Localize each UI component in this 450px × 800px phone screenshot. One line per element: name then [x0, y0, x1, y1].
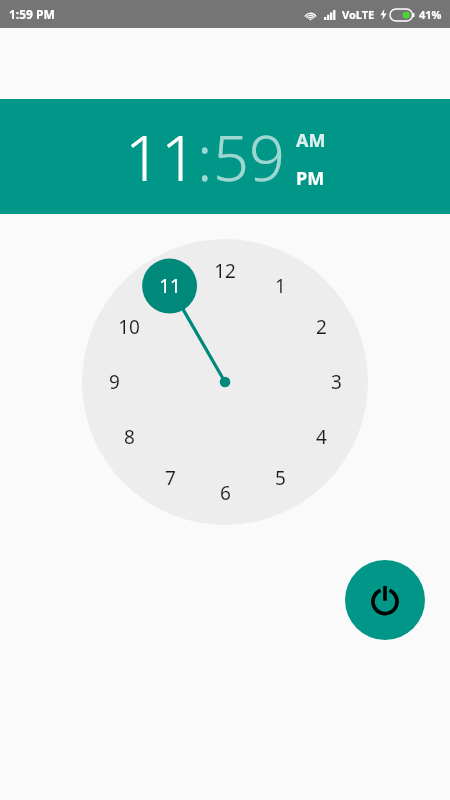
button[interactable]: 3 [319, 365, 353, 399]
staticText: 41% [419, 7, 442, 22]
button[interactable]: 59 [213, 114, 285, 200]
button[interactable]: 6 [208, 476, 242, 510]
staticText: 2 [316, 314, 327, 340]
staticText: 12 [214, 258, 236, 284]
staticText: 9 [109, 369, 120, 395]
staticText: 1:59 PM [9, 6, 55, 22]
staticText: 10 [118, 314, 140, 340]
button[interactable]: 10 [112, 310, 146, 344]
staticText: 4 [316, 424, 327, 450]
button[interactable]: Power [345, 560, 425, 640]
button[interactable]: 2 [304, 310, 338, 344]
staticText: 7 [165, 465, 176, 491]
staticText: VoLTE [342, 7, 375, 22]
staticText: : [197, 114, 213, 200]
button[interactable]: PM [296, 165, 325, 192]
button[interactable]: 8 [112, 420, 146, 454]
button[interactable]: 5 [263, 461, 297, 495]
staticText: 6 [220, 480, 231, 506]
button[interactable]: 11 [125, 114, 197, 200]
button[interactable]: 9 [97, 365, 131, 399]
staticText: 5 [275, 465, 286, 491]
button[interactable]: 1 [263, 269, 297, 303]
button[interactable]: 1 [0, 232, 450, 532]
button[interactable]: 11 [153, 269, 187, 303]
button[interactable]: 12 [208, 254, 242, 288]
staticText: 3 [331, 369, 342, 395]
staticText: 8 [124, 424, 135, 450]
staticText: 11 [159, 273, 181, 299]
button[interactable]: 4 [304, 420, 338, 454]
staticText: 1 [275, 273, 286, 299]
button[interactable]: AM [296, 127, 326, 154]
button[interactable]: 7 [153, 461, 187, 495]
